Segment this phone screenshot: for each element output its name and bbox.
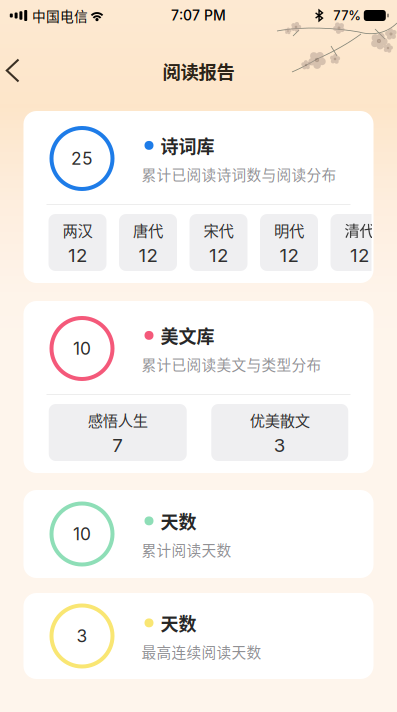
- staticText: 清代: [344, 219, 374, 241]
- staticText: 累计阅读天数: [141, 539, 231, 560]
- button[interactable]: 感悟人生: [49, 404, 187, 461]
- staticText: 77%: [333, 8, 361, 23]
- staticText: 天数: [160, 610, 196, 636]
- staticText: 优美散文: [250, 409, 310, 431]
- staticText: 唐代: [133, 219, 163, 241]
- staticText: 天数: [160, 508, 196, 534]
- staticText: 12: [350, 244, 369, 266]
- staticText: 明代: [274, 219, 304, 241]
- button[interactable]: 两汉: [48, 214, 106, 271]
- button[interactable]: 优美散文: [211, 404, 348, 461]
- staticText: 两汉: [62, 219, 92, 241]
- staticText: 12: [209, 244, 228, 266]
- button[interactable]: 宋代: [189, 214, 247, 271]
- staticText: 累计已阅读诗词数与阅读分布: [141, 163, 336, 185]
- button[interactable]: 唐代: [119, 214, 177, 271]
- staticText: 3: [76, 625, 87, 646]
- staticText: 最高连续阅读天数: [141, 641, 261, 662]
- staticText: 12: [279, 244, 298, 266]
- staticText: 诗词库: [160, 132, 214, 158]
- staticText: 宋代: [203, 219, 233, 241]
- staticText: 10: [73, 523, 91, 544]
- staticText: 感悟人生: [88, 409, 148, 431]
- staticText: 7:07 PM: [171, 7, 226, 24]
- staticText: 12: [138, 244, 157, 266]
- button[interactable]: 明代: [260, 214, 318, 271]
- staticText: 12: [68, 244, 87, 266]
- staticText: 中国电信: [32, 6, 88, 25]
- staticText: 累计已阅读美文与类型分布: [141, 353, 321, 375]
- button[interactable]: 清代: [330, 214, 388, 271]
- staticText: 7: [112, 434, 123, 456]
- staticText: 阅读报告: [162, 58, 234, 84]
- staticText: 10: [73, 338, 91, 359]
- staticText: 3: [274, 434, 286, 456]
- staticText: 25: [71, 148, 93, 169]
- button[interactable]: Back: [0, 47, 42, 95]
- staticText: 美文库: [160, 322, 214, 348]
